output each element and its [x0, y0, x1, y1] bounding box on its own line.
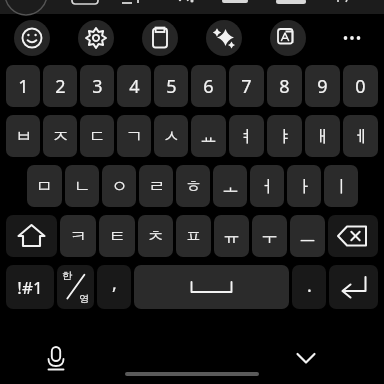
staticText: 5: [166, 74, 177, 99]
button[interactable]: ㅗ: [213, 165, 247, 207]
button[interactable]: 8: [267, 65, 302, 107]
staticText: ㅁ: [36, 176, 53, 197]
button[interactable]: Clipboard: [142, 20, 178, 56]
button[interactable]: ㅂ: [6, 115, 40, 157]
button[interactable]: ㅣ: [324, 165, 358, 207]
staticText: 1: [18, 74, 29, 99]
staticText: ㅌ: [109, 226, 126, 247]
staticText: ㅍ: [185, 226, 202, 247]
staticText: ㅔ: [352, 126, 369, 147]
button[interactable]: Enter: [329, 265, 378, 309]
button[interactable]: Space: [134, 265, 289, 309]
button[interactable]: Settings: [78, 20, 114, 56]
staticText: ㅐ: [314, 126, 331, 147]
button[interactable]: ㄴ: [65, 165, 99, 207]
button[interactable]: ㅌ: [99, 215, 135, 257]
button[interactable]: 2: [43, 65, 77, 107]
staticText: 영: [79, 292, 89, 305]
staticText: ㅕ: [238, 126, 255, 147]
staticText: ㅜ: [261, 226, 278, 247]
staticText: 3: [92, 74, 103, 99]
button[interactable]: Korean English toggle: [57, 265, 94, 309]
button[interactable]: 1: [6, 65, 40, 107]
button[interactable]: ㅈ: [43, 115, 77, 157]
staticText: ㅠ: [223, 226, 240, 247]
staticText: 9: [317, 74, 328, 99]
button[interactable]: AI assist: [206, 20, 242, 56]
button[interactable]: 5: [154, 65, 188, 107]
button[interactable]: ㅇ: [102, 165, 136, 207]
button[interactable]: ㅎ: [176, 165, 210, 207]
button[interactable]: !#1: [6, 265, 54, 309]
button[interactable]: .: [292, 265, 326, 309]
staticText: ㄱ: [126, 126, 143, 147]
staticText: 8: [279, 74, 290, 99]
staticText: ㅎ: [185, 176, 202, 197]
staticText: .: [307, 273, 312, 298]
button[interactable]: ㅠ: [214, 215, 249, 257]
button[interactable]: Shift: [6, 215, 57, 257]
staticText: 4: [129, 74, 140, 99]
staticText: ㄷ: [89, 126, 106, 147]
button[interactable]: ㄱ: [117, 115, 151, 157]
button[interactable]: 0: [343, 65, 378, 107]
button[interactable]: ㅐ: [305, 115, 340, 157]
button[interactable]: ㅜ: [252, 215, 287, 257]
button[interactable]: ㅔ: [343, 115, 378, 157]
staticText: 한: [62, 269, 72, 282]
staticText: ㅡ: [299, 226, 316, 247]
button[interactable]: Backspace: [328, 215, 378, 257]
staticText: ㅛ: [200, 126, 217, 147]
staticText: 7: [241, 74, 252, 99]
staticText: ㅓ: [259, 176, 276, 197]
staticText: ㅑ: [276, 126, 293, 147]
button[interactable]: ㅕ: [229, 115, 264, 157]
button[interactable]: Translate: [270, 20, 306, 56]
button[interactable]: ㅋ: [60, 215, 96, 257]
button[interactable]: ㅛ: [191, 115, 226, 157]
button[interactable]: 6: [191, 65, 226, 107]
staticText: ㄴ: [74, 176, 91, 197]
button[interactable]: Emoji: [14, 20, 50, 56]
staticText: ㅇ: [111, 176, 128, 197]
button[interactable]: More options: [334, 20, 370, 56]
button[interactable]: ㅍ: [176, 215, 211, 257]
staticText: ,: [112, 271, 117, 296]
button[interactable]: 3: [80, 65, 114, 107]
staticText: ㅅ: [163, 126, 180, 147]
staticText: ㄹ: [148, 176, 165, 197]
button[interactable]: 4: [117, 65, 151, 107]
staticText: ㅏ: [296, 176, 313, 197]
staticText: 0: [355, 74, 366, 99]
button[interactable]: ㄷ: [80, 115, 114, 157]
button[interactable]: ㅓ: [250, 165, 284, 207]
button[interactable]: ㅡ: [290, 215, 325, 257]
staticText: !#1: [17, 276, 43, 299]
staticText: ㅣ: [333, 176, 350, 197]
staticText: ㅂ: [15, 126, 32, 147]
staticText: ㅗ: [222, 176, 239, 197]
staticText: ㅋ: [70, 226, 87, 247]
staticText: 2: [55, 74, 66, 99]
staticText: 6: [203, 74, 214, 99]
button[interactable]: 9: [305, 65, 340, 107]
button[interactable]: ㅁ: [27, 165, 62, 207]
button[interactable]: ,: [97, 265, 131, 309]
button[interactable]: ㅏ: [287, 165, 321, 207]
button[interactable]: Hide keyboard: [286, 338, 326, 378]
staticText: ㅊ: [147, 226, 164, 247]
button[interactable]: ㅑ: [267, 115, 302, 157]
button[interactable]: ㅊ: [138, 215, 173, 257]
button[interactable]: ㅅ: [154, 115, 188, 157]
staticText: ㅈ: [52, 126, 69, 147]
button[interactable]: ㄹ: [139, 165, 173, 207]
button[interactable]: 7: [229, 65, 264, 107]
button[interactable]: Voice input: [36, 338, 76, 378]
